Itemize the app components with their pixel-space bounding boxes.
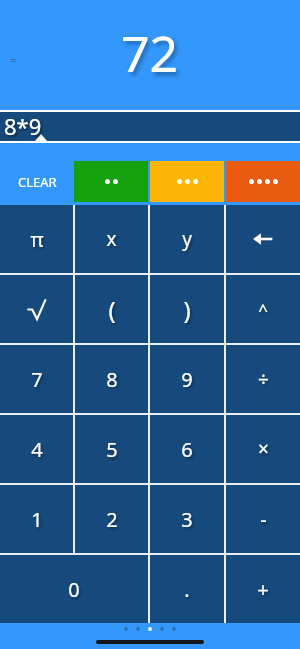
button[interactable]: 4 — [0, 415, 73, 483]
staticText: . — [184, 576, 190, 603]
staticText: ( — [108, 293, 116, 326]
button[interactable]: 3 — [150, 485, 224, 553]
staticText: = — [10, 52, 17, 67]
staticText: 3 — [181, 506, 193, 533]
button[interactable]: - — [226, 485, 300, 553]
staticText: x — [106, 226, 117, 252]
button[interactable]: ÷ — [226, 345, 300, 413]
staticText: 0 — [68, 576, 80, 603]
button[interactable]: Memory 2 — [150, 161, 224, 202]
button[interactable]: 5 — [75, 415, 148, 483]
staticText: 1 — [31, 506, 43, 533]
staticText: 8*9 — [4, 111, 42, 141]
button[interactable]: 1 — [0, 485, 73, 553]
button[interactable]: 0 — [0, 555, 148, 623]
staticText: 7 — [31, 366, 43, 393]
staticText: + — [257, 576, 269, 603]
staticText: 72 — [121, 19, 179, 87]
button[interactable]: CLEAR — [0, 158, 74, 205]
button[interactable]: × — [226, 415, 300, 483]
button[interactable]: 6 — [150, 415, 224, 483]
staticText: 6 — [181, 436, 193, 463]
button[interactable]: + — [226, 555, 300, 623]
staticText: y — [182, 226, 192, 252]
button[interactable]: Square root — [0, 275, 73, 343]
button[interactable]: 8 — [75, 345, 148, 413]
button[interactable]: Backspace — [226, 205, 300, 273]
button[interactable]: 7 — [0, 345, 73, 413]
staticText: 2 — [106, 506, 118, 533]
button[interactable]: ) — [150, 275, 224, 343]
staticText: - — [260, 506, 267, 533]
staticText: 8 — [106, 366, 118, 393]
staticText: π — [30, 226, 44, 253]
staticText: ÷ — [258, 366, 269, 392]
staticText: 5 — [106, 436, 118, 463]
staticText: ) — [183, 293, 191, 326]
button[interactable]: 9 — [150, 345, 224, 413]
button[interactable]: π — [0, 205, 73, 273]
staticText: 4 — [31, 436, 43, 463]
button[interactable]: x — [75, 205, 148, 273]
button[interactable]: y — [150, 205, 224, 273]
staticText: CLEAR — [18, 173, 57, 191]
button[interactable]: ( — [75, 275, 148, 343]
button[interactable]: ^ — [226, 275, 300, 343]
button[interactable]: Memory 3 — [226, 161, 300, 202]
staticText: 9 — [181, 366, 193, 393]
button[interactable]: . — [150, 555, 224, 623]
staticText: ^ — [258, 298, 268, 321]
button[interactable]: Memory 1 — [74, 161, 148, 202]
button[interactable]: 2 — [75, 485, 148, 553]
staticText: × — [258, 436, 269, 462]
